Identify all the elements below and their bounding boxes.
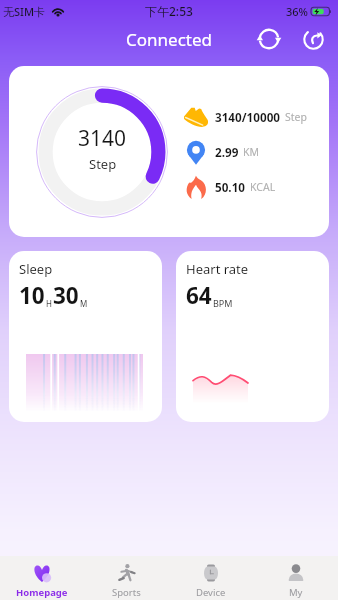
staticText: 下午2:53 — [145, 3, 193, 19]
button[interactable]: Device — [168, 563, 253, 600]
button[interactable]: 3140 — [9, 66, 329, 237]
staticText: 10 — [19, 280, 45, 311]
staticText: Step — [89, 155, 117, 173]
staticText: 3140/10000 — [215, 109, 281, 125]
staticText: Device — [196, 586, 226, 599]
staticText: 30 — [53, 280, 79, 311]
staticText: 无SIM卡 — [3, 4, 46, 19]
staticText: KCAL — [250, 180, 276, 194]
button[interactable]: Sync — [253, 23, 285, 55]
staticText: M — [80, 298, 88, 309]
staticText: Step — [285, 110, 307, 124]
staticText: KM — [243, 145, 260, 159]
button[interactable]: Homepage — [0, 563, 84, 600]
button[interactable]: My — [253, 563, 338, 600]
staticText: Connected — [126, 28, 212, 51]
button[interactable]: Update — [297, 23, 329, 55]
staticText: 36% — [286, 4, 308, 19]
staticText: 3140 — [78, 124, 127, 153]
staticText: 50.10 — [215, 179, 246, 195]
button[interactable]: Sports — [84, 563, 168, 600]
staticText: Sports — [112, 586, 141, 599]
button[interactable]: Heart rate — [176, 251, 329, 422]
staticText: 64 — [186, 280, 212, 311]
button[interactable]: Sleep — [9, 251, 162, 422]
staticText: Sleep — [19, 260, 53, 278]
staticText: Heart rate — [186, 260, 249, 278]
staticText: My — [289, 586, 303, 599]
staticText: 2.99 — [215, 144, 239, 160]
staticText: BPM — [213, 297, 233, 309]
staticText: Homepage — [16, 586, 68, 599]
staticText: H — [46, 298, 52, 309]
